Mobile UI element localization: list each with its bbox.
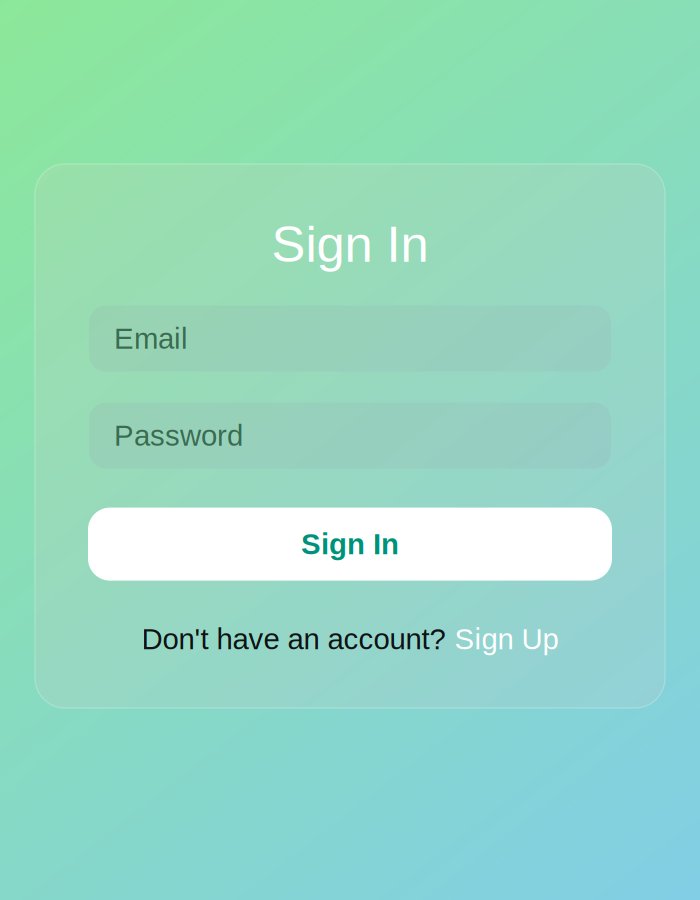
staticText: Sign In [271, 216, 428, 273]
staticText: Sign In [301, 528, 399, 560]
staticText: Email [114, 322, 188, 355]
button[interactable]: Sign In [88, 508, 612, 581]
button[interactable]: Email [89, 306, 611, 372]
button[interactable]: Sign Up [454, 623, 558, 655]
staticText: Don't have an account? [141, 623, 445, 655]
staticText: Sign Up [454, 623, 558, 655]
staticText: Password [114, 419, 243, 452]
button[interactable]: Password [89, 403, 611, 469]
